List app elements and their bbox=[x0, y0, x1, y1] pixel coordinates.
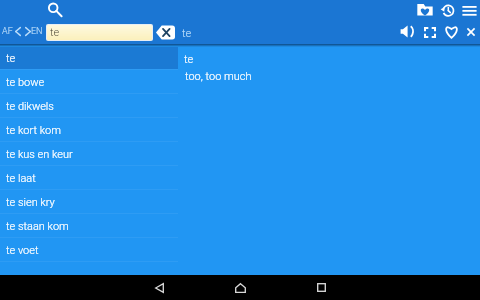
button[interactable]: te laat bbox=[0, 166, 178, 190]
staticText: te bbox=[50, 26, 60, 39]
button[interactable]: History bbox=[440, 3, 456, 19]
button[interactable]: te staan kom bbox=[0, 214, 178, 238]
button[interactable]: Back bbox=[135, 275, 183, 300]
button[interactable]: Clear text bbox=[156, 25, 175, 40]
staticText: te sien kry bbox=[6, 196, 55, 209]
button[interactable]: AF bbox=[2, 26, 13, 37]
button[interactable]: Add to favourites bbox=[444, 26, 459, 39]
button[interactable]: Recent apps bbox=[297, 275, 345, 300]
button[interactable]: Next language bbox=[25, 27, 31, 36]
staticText: te voet bbox=[6, 244, 39, 257]
button[interactable]: Home bbox=[216, 275, 264, 300]
button[interactable]: EN bbox=[31, 26, 43, 37]
button[interactable]: te bbox=[184, 53, 194, 66]
button[interactable]: te sien kry bbox=[0, 190, 178, 214]
staticText: te bowe bbox=[6, 76, 45, 89]
button[interactable]: te bbox=[0, 46, 178, 70]
staticText: te kus en keur bbox=[6, 148, 73, 161]
staticText: te staan kom bbox=[6, 220, 69, 233]
staticText: te kort kom bbox=[6, 124, 61, 137]
button[interactable]: te dikwels bbox=[0, 94, 178, 118]
button[interactable]: te kus en keur bbox=[0, 142, 178, 166]
staticText: te laat bbox=[6, 172, 36, 185]
button[interactable]: te bbox=[47, 25, 152, 40]
staticText: EN bbox=[31, 26, 43, 37]
button[interactable]: Favourites folder bbox=[417, 2, 433, 17]
button[interactable]: Search bbox=[44, 0, 64, 20]
staticText: te bbox=[6, 52, 16, 65]
button[interactable]: te kort kom bbox=[0, 118, 178, 142]
staticText: AF bbox=[2, 26, 13, 37]
button[interactable]: too, too much bbox=[185, 70, 252, 83]
button[interactable]: Menu bbox=[461, 3, 477, 16]
button[interactable]: Close bbox=[467, 28, 475, 36]
button[interactable]: Previous language bbox=[15, 27, 21, 36]
staticText: te bbox=[182, 27, 192, 40]
staticText: te dikwels bbox=[6, 100, 54, 113]
button[interactable]: Pronounce bbox=[400, 25, 414, 38]
button[interactable]: Fullscreen bbox=[424, 27, 436, 38]
button[interactable]: te voet bbox=[0, 238, 178, 262]
button[interactable]: te bowe bbox=[0, 70, 178, 94]
